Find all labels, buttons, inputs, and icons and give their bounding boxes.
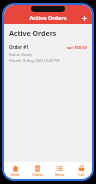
staticText: Status: Ready — [9, 52, 32, 57]
staticText: Home — [10, 173, 20, 177]
staticText: Active Orders — [9, 29, 57, 39]
button[interactable]: Order #1 — [4, 43, 92, 64]
staticText: Orders — [32, 173, 43, 177]
staticText: Placed: 10 Aug 2023 10:45 PM — [9, 58, 60, 63]
button[interactable]: Orders — [26, 162, 48, 179]
button[interactable]: Home — [4, 162, 26, 179]
staticText: Order #1 — [9, 44, 29, 50]
staticText: Active Orders — [29, 14, 67, 21]
button[interactable]: Cart — [70, 162, 92, 179]
button[interactable]: Menu — [48, 162, 70, 179]
staticText: sar 750.00 — [67, 45, 87, 50]
button[interactable]: Add order — [80, 14, 89, 23]
staticText: Cart — [78, 173, 85, 177]
staticText: Menu — [55, 173, 64, 177]
